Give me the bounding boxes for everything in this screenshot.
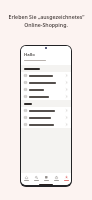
button[interactable]: Menu item icon — [21, 79, 71, 86]
staticText: Hallo — [24, 52, 35, 58]
other: Menu item icon — [24, 123, 27, 126]
button[interactable]: Menu item icon — [21, 72, 71, 79]
button[interactable]: Categories — [41, 173, 51, 183]
button[interactable]: Home — [21, 173, 31, 183]
other: Menu item icon — [24, 81, 27, 84]
other: Menu item icon — [24, 109, 27, 112]
button[interactable]: Menu item icon — [21, 93, 71, 100]
button[interactable]: Menu item icon — [21, 121, 71, 128]
button[interactable]: Search — [31, 173, 41, 183]
staticText: Erleben Sie „ausgezeichnetes“ — [8, 13, 85, 20]
other: Menu item icon — [24, 74, 27, 77]
button[interactable]: Cart — [51, 173, 61, 183]
button[interactable]: Menu item icon — [21, 86, 71, 93]
button[interactable]: Menu item icon — [21, 114, 71, 121]
button[interactable]: Menu item icon — [21, 107, 71, 114]
button[interactable]: Account — [61, 173, 71, 183]
other: Menu item icon — [24, 88, 27, 91]
other: Menu item icon — [24, 95, 27, 98]
other: Menu item icon — [24, 116, 27, 119]
staticText: Online-Shopping. — [24, 21, 68, 28]
